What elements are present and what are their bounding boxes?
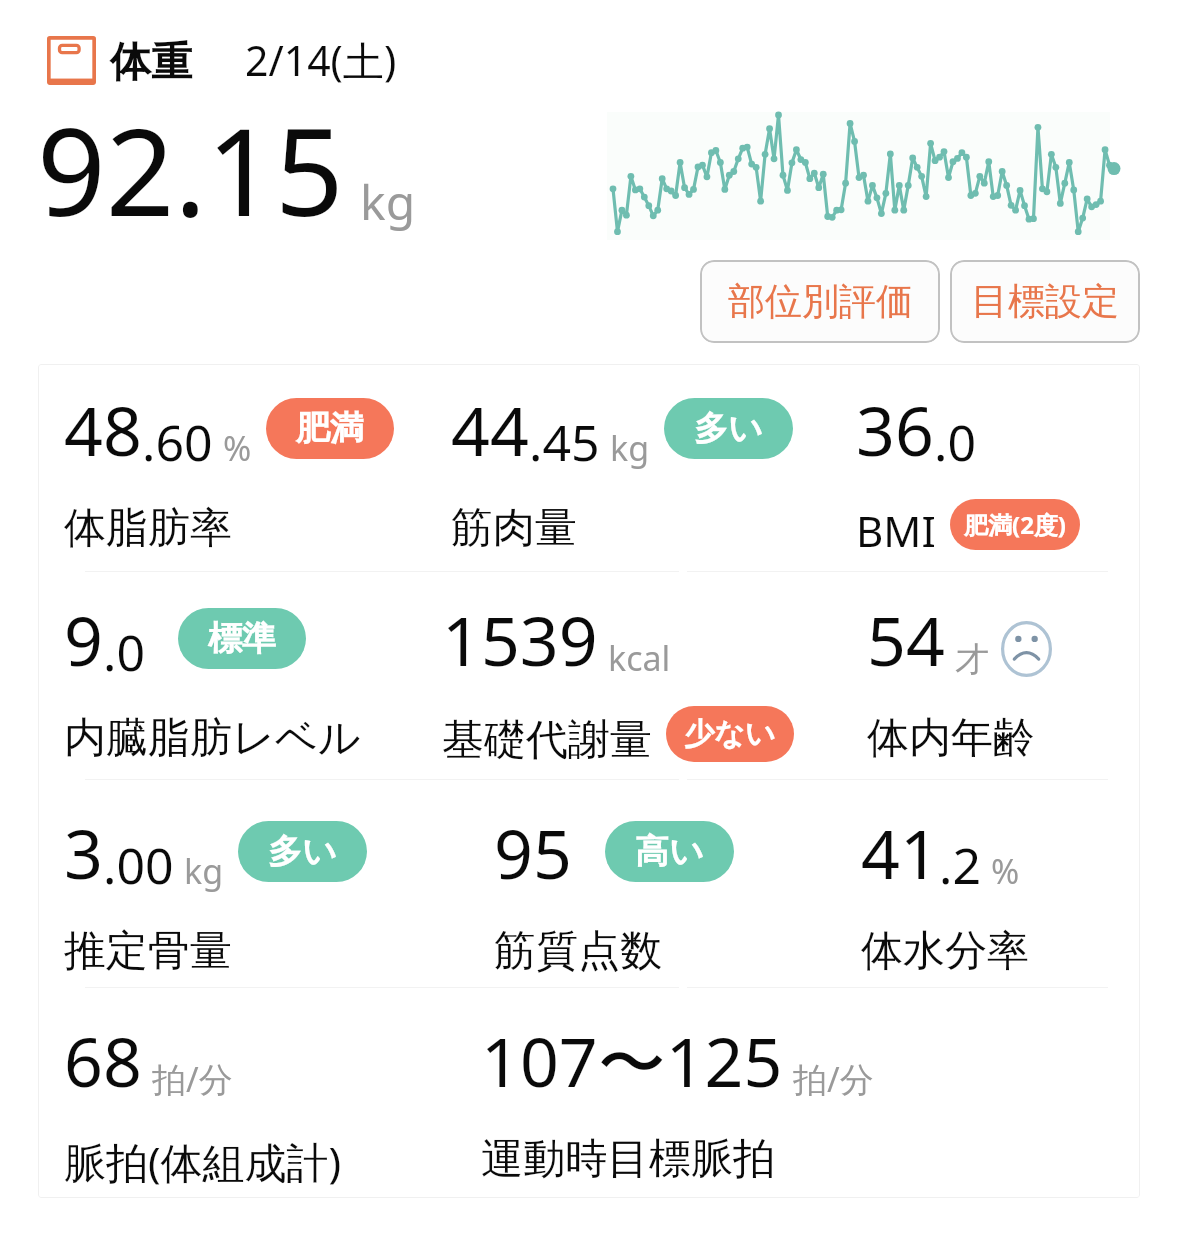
staticText: 3: [64, 806, 103, 899]
button[interactable]: 68: [38, 988, 342, 1195]
staticText: 41: [861, 806, 939, 899]
staticText: 才: [955, 638, 989, 681]
staticText: 36: [856, 383, 934, 476]
button[interactable]: 少ない: [666, 706, 794, 762]
staticText: kg: [610, 425, 650, 471]
staticText: kcal: [608, 635, 671, 681]
staticText: 95: [494, 806, 572, 899]
staticText: .0: [103, 618, 145, 686]
staticText: kg: [184, 848, 224, 894]
button[interactable]: 36: [830, 364, 1080, 571]
staticText: 107〜125: [481, 1014, 783, 1107]
staticText: 拍/分: [152, 1056, 233, 1102]
staticText: 標準: [208, 617, 276, 660]
staticText: BMI: [856, 502, 936, 559]
staticText: 体脂肪率: [64, 502, 232, 555]
button[interactable]: 多い: [664, 398, 793, 459]
staticText: 多い: [268, 830, 337, 873]
staticText: 92.15: [37, 88, 344, 251]
staticText: 68: [64, 1014, 142, 1107]
staticText: 体重: [110, 37, 192, 89]
button[interactable]: 48: [38, 364, 394, 571]
button[interactable]: 9: [38, 572, 361, 779]
button[interactable]: 高い: [605, 821, 734, 882]
button[interactable]: 目標設定: [950, 260, 1140, 343]
button[interactable]: 95: [425, 780, 734, 987]
button[interactable]: 44: [425, 364, 793, 571]
staticText: 48: [64, 383, 142, 476]
staticText: .0: [934, 408, 976, 476]
staticText: kg: [360, 169, 416, 234]
button[interactable]: 107〜125: [425, 988, 874, 1195]
staticText: 拍/分: [793, 1056, 874, 1102]
button[interactable]: 部位別評価: [700, 260, 940, 343]
staticText: 体内年齢: [867, 712, 1035, 765]
staticText: 1539: [442, 593, 598, 686]
staticText: 肥満(2度): [964, 508, 1066, 541]
staticText: 基礎代謝量: [442, 714, 652, 767]
button[interactable]: 54: [830, 572, 1052, 779]
staticText: .00: [103, 831, 174, 899]
staticText: 2/14(土): [245, 32, 397, 88]
staticText: .2: [939, 831, 981, 899]
staticText: 脈拍(体組成計): [64, 1133, 342, 1190]
staticText: 筋質点数: [494, 925, 662, 978]
staticText: 9: [64, 593, 103, 686]
staticText: .45: [529, 408, 600, 476]
staticText: 少ない: [684, 715, 776, 753]
staticText: 体水分率: [861, 925, 1029, 978]
staticText: 多い: [694, 407, 763, 450]
staticText: 部位別評価: [728, 278, 913, 325]
staticText: .60: [142, 408, 213, 476]
button[interactable]: 肥満(2度): [950, 499, 1080, 550]
staticText: 筋肉量: [451, 502, 577, 555]
staticText: 肥満: [296, 407, 364, 450]
button[interactable]: 1539: [425, 572, 794, 779]
button[interactable]: 標準: [178, 608, 306, 669]
button[interactable]: 3: [38, 780, 367, 987]
button[interactable]: 多い: [238, 821, 367, 882]
staticText: 54: [867, 593, 945, 686]
staticText: 目標設定: [971, 278, 1119, 325]
staticText: 44: [451, 383, 529, 476]
staticText: %: [223, 425, 252, 471]
staticText: 推定骨量: [64, 925, 232, 978]
button[interactable]: 肥満: [266, 398, 394, 459]
staticText: 高い: [635, 830, 704, 873]
other: Weight scale: [47, 36, 96, 85]
button[interactable]: 41: [830, 780, 1029, 987]
staticText: %: [991, 848, 1020, 894]
staticText: 運動時目標脈拍: [481, 1133, 775, 1186]
staticText: 内臓脂肪レベル: [64, 712, 361, 765]
